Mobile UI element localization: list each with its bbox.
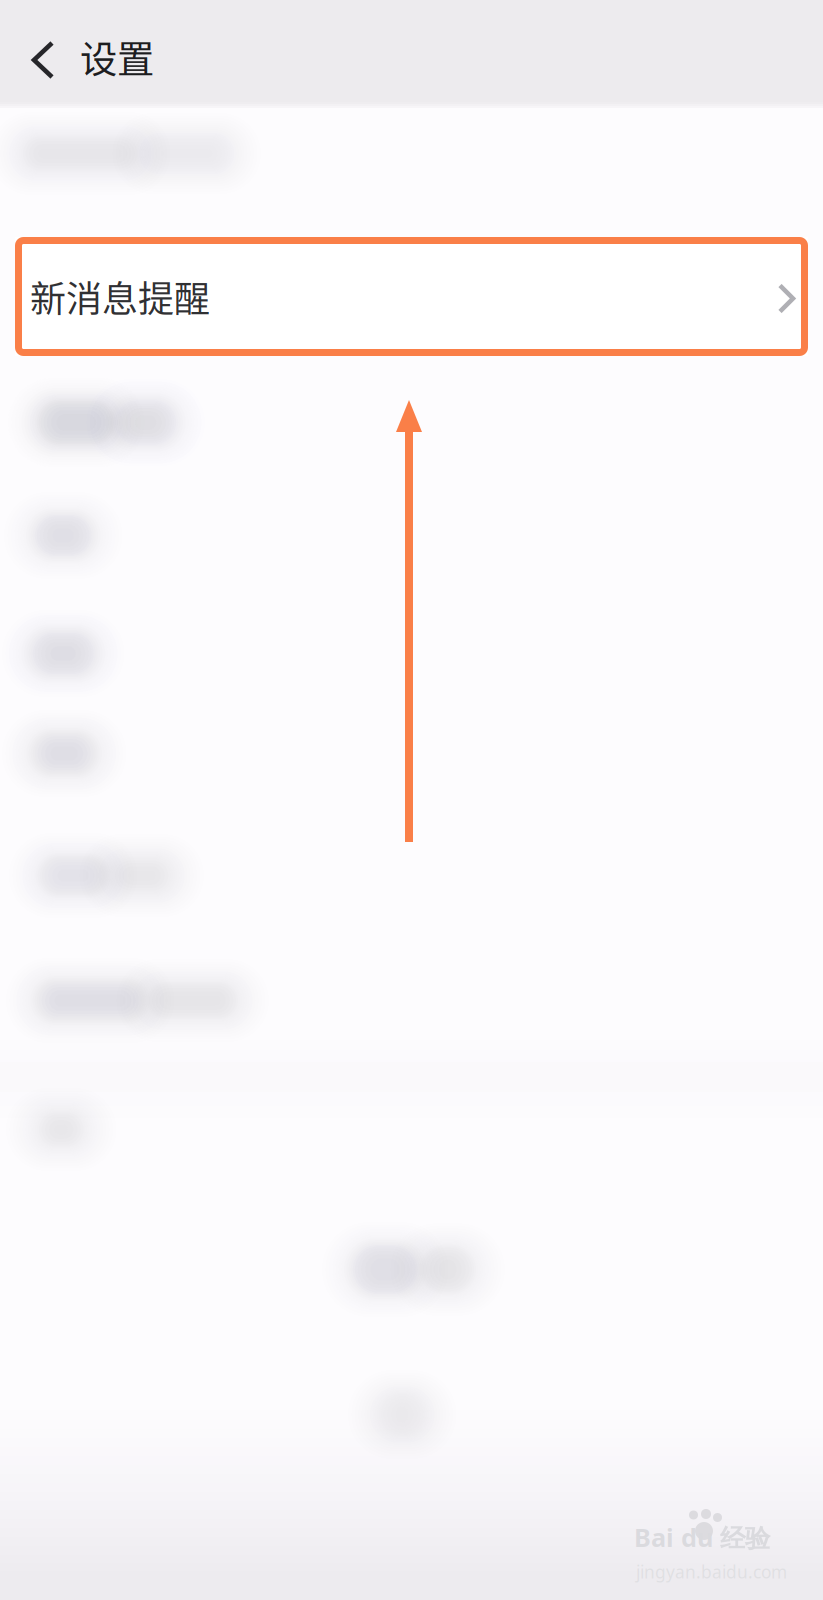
button[interactable]: 新消息提醒: [15, 237, 808, 356]
staticText: Bai du 经验: [634, 1520, 770, 1555]
staticText: 设置: [80, 30, 154, 84]
button[interactable]: Back: [0, 0, 80, 102]
staticText: jingyan.baidu.com: [636, 1560, 787, 1584]
staticText: 新消息提醒: [30, 270, 210, 322]
